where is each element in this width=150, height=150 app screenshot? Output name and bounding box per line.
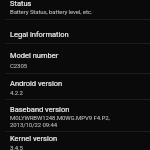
staticText: 3.4.5	[10, 144, 23, 150]
staticText: Battery Status, battery level, etc.	[10, 8, 93, 15]
staticText: 4.2.2	[10, 89, 23, 96]
button[interactable]: Kernel version	[0, 132, 150, 150]
staticText: Model number	[10, 51, 59, 60]
button[interactable]: Status	[0, 0, 150, 19]
staticText: 2013/10/22 09:44	[10, 121, 58, 128]
staticText: C2305	[10, 62, 27, 69]
staticText: Legal information	[10, 30, 69, 39]
button[interactable]: Baseband version	[0, 100, 150, 131]
staticText: Baseband version	[10, 105, 70, 114]
staticText: Status	[10, 0, 32, 8]
button[interactable]: Legal information	[0, 20, 150, 43]
staticText: Android version	[10, 79, 63, 88]
staticText: Kernel version	[10, 134, 58, 143]
button[interactable]: Model number	[0, 44, 150, 73]
button[interactable]: Android version	[0, 74, 150, 99]
staticText: M0LYWRBW1248.M0WG.MPV9 F4.P2,	[10, 114, 110, 121]
